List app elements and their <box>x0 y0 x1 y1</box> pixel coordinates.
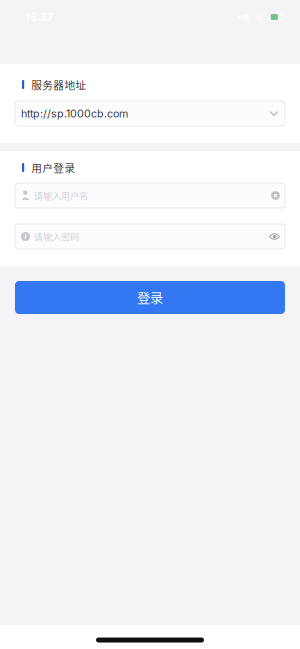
button[interactable]: 登录 <box>15 281 285 314</box>
button[interactable]: http://sp.1000cb.com <box>15 101 285 126</box>
staticText: 请输入密码 <box>34 230 79 243</box>
button[interactable]: 请输入密码 <box>15 224 285 249</box>
staticText: 服务器地址 <box>31 77 86 92</box>
staticText: http://sp.1000cb.com <box>21 107 128 120</box>
staticText: 用户登录 <box>31 160 75 175</box>
staticText: 15:37 <box>25 10 53 23</box>
staticText: 登录 <box>137 288 163 307</box>
button[interactable]: 请输入用户名 <box>15 183 285 208</box>
staticText: 请输入用户名 <box>34 189 88 202</box>
